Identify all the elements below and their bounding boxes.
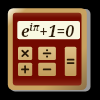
button[interactable]: Calculator xyxy=(0,0,100,100)
staticText: eiπ+1=0 xyxy=(21,20,74,41)
